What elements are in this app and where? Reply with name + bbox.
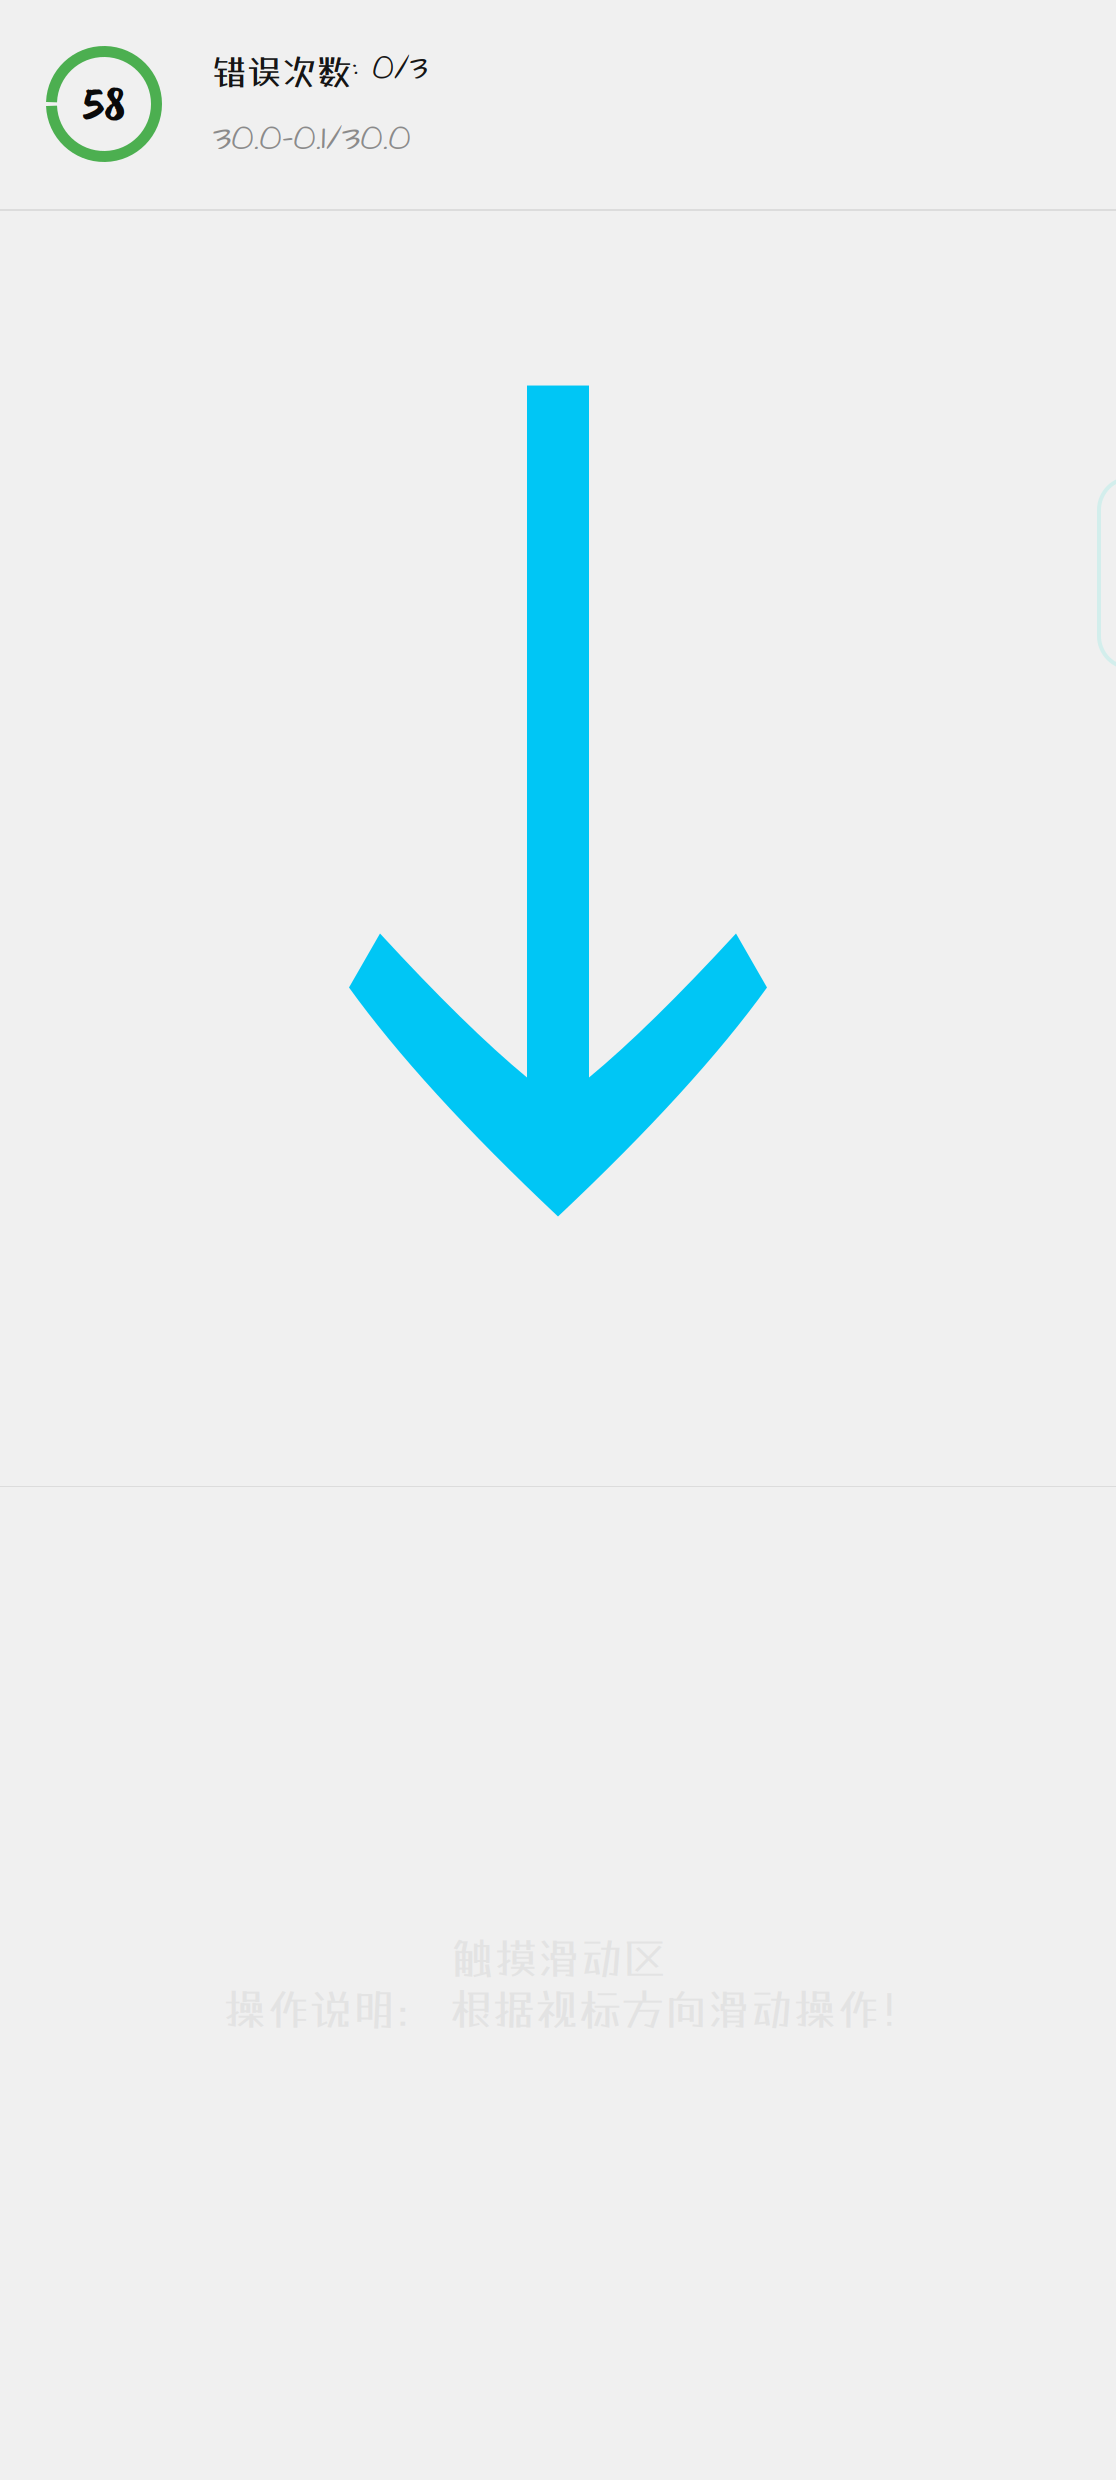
staticText: 58 xyxy=(83,75,125,133)
staticText: 触摸滑动区 xyxy=(451,1933,666,1983)
button[interactable]: 视标方向：下 xyxy=(0,211,1116,1486)
staticText: 错误次数: 0/3 xyxy=(212,44,428,92)
staticText: 30.0-0.1/30.0 xyxy=(213,113,411,163)
staticText: 操作说明： 根据视标方向滑动操作！ xyxy=(223,1984,922,2034)
